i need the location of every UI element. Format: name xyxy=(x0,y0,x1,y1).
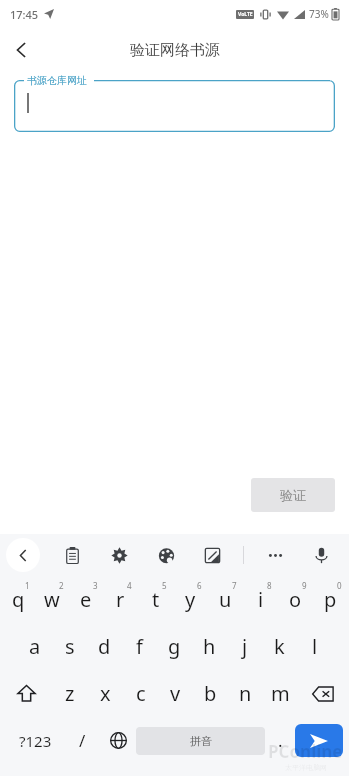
button[interactable]: p xyxy=(313,576,348,623)
staticText: PConline xyxy=(268,740,343,763)
button[interactable]: c xyxy=(123,670,158,717)
button[interactable]: / xyxy=(64,717,100,764)
staticText: 验证 xyxy=(280,487,306,503)
button[interactable]: Voice input xyxy=(306,540,336,570)
button[interactable]: 验证 xyxy=(251,478,335,512)
button[interactable]: Send xyxy=(295,724,343,757)
button[interactable]: r xyxy=(103,576,138,623)
button[interactable]: s xyxy=(52,623,87,670)
button[interactable]: k xyxy=(262,623,297,670)
button[interactable]: Settings xyxy=(104,540,134,570)
button[interactable]: Back xyxy=(0,28,44,72)
staticText: x xyxy=(100,680,111,707)
staticText: t xyxy=(152,586,160,613)
staticText: b xyxy=(204,680,217,707)
staticText: ?123 xyxy=(19,731,52,751)
staticText: 6 xyxy=(197,580,202,591)
button[interactable]: t xyxy=(138,576,173,623)
staticText: a xyxy=(29,633,41,660)
staticText: 验证网络书源 xyxy=(130,41,220,60)
staticText: 3 xyxy=(93,580,98,591)
button[interactable]: e xyxy=(69,576,103,623)
staticText: h xyxy=(203,633,216,660)
staticText: 9 xyxy=(302,580,307,591)
staticText: k xyxy=(274,633,285,660)
staticText: g xyxy=(168,633,181,660)
button[interactable]: Switch language xyxy=(100,717,136,764)
staticText: i xyxy=(258,586,264,613)
staticText: 4 xyxy=(127,580,132,591)
staticText: 73% xyxy=(309,7,329,21)
staticText: p xyxy=(324,586,337,613)
staticText: d xyxy=(98,633,111,660)
button[interactable]: Theme xyxy=(151,540,181,570)
button[interactable]: i xyxy=(243,576,278,623)
button[interactable]: y xyxy=(173,576,208,623)
button[interactable]: Shift xyxy=(1,670,52,717)
staticText: 7 xyxy=(232,580,237,591)
staticText: l xyxy=(312,633,318,660)
button[interactable]: More options xyxy=(260,540,290,570)
button[interactable]: u xyxy=(208,576,243,623)
button[interactable]: o xyxy=(278,576,313,623)
staticText: 8 xyxy=(267,580,272,591)
staticText: 拼音 xyxy=(190,734,212,748)
button[interactable]: l xyxy=(297,623,332,670)
staticText: 1 xyxy=(25,580,30,591)
button[interactable]: d xyxy=(87,623,122,670)
button[interactable]: Collapse keyboard xyxy=(6,538,40,572)
staticText: u xyxy=(219,586,232,613)
button[interactable]: Backspace xyxy=(298,670,348,717)
button[interactable]: n xyxy=(228,670,263,717)
button[interactable]: m xyxy=(263,670,298,717)
button[interactable]: v xyxy=(158,670,193,717)
button[interactable]: a xyxy=(17,623,52,670)
button[interactable]: ?123 xyxy=(6,717,64,764)
button[interactable]: 拼音 xyxy=(136,727,265,755)
button[interactable]: g xyxy=(157,623,192,670)
staticText: m xyxy=(271,680,290,707)
staticText: 17:45 xyxy=(10,7,39,22)
button[interactable]: h xyxy=(192,623,227,670)
button[interactable]: . xyxy=(265,717,295,764)
button[interactable]: x xyxy=(88,670,123,717)
staticText: f xyxy=(136,633,143,660)
staticText: e xyxy=(80,586,92,613)
staticText: 0 xyxy=(337,580,342,591)
button[interactable]: j xyxy=(227,623,262,670)
staticText: z xyxy=(65,680,75,707)
button[interactable]: w xyxy=(35,576,69,623)
staticText: j xyxy=(242,633,248,660)
staticText: 书源仓库网址 xyxy=(27,74,87,87)
staticText: w xyxy=(44,586,60,613)
staticText: VoLTE xyxy=(238,11,253,18)
staticText: q xyxy=(12,586,25,613)
staticText: o xyxy=(289,586,302,613)
button[interactable]: Clipboard xyxy=(57,540,87,570)
staticText: / xyxy=(79,729,86,752)
button[interactable]: q xyxy=(1,576,35,623)
staticText: s xyxy=(65,633,75,660)
button[interactable]: f xyxy=(122,623,157,670)
staticText: 2 xyxy=(59,580,64,591)
staticText: 5 xyxy=(162,580,167,591)
staticText: v xyxy=(170,680,181,707)
button[interactable]: z xyxy=(52,670,88,717)
staticText: n xyxy=(239,680,252,707)
staticText: r xyxy=(116,586,125,613)
staticText: . xyxy=(278,729,283,752)
button[interactable]: Resize keyboard xyxy=(197,540,227,570)
staticText: y xyxy=(185,586,196,613)
staticText: c xyxy=(136,680,146,707)
button[interactable]: b xyxy=(193,670,228,717)
